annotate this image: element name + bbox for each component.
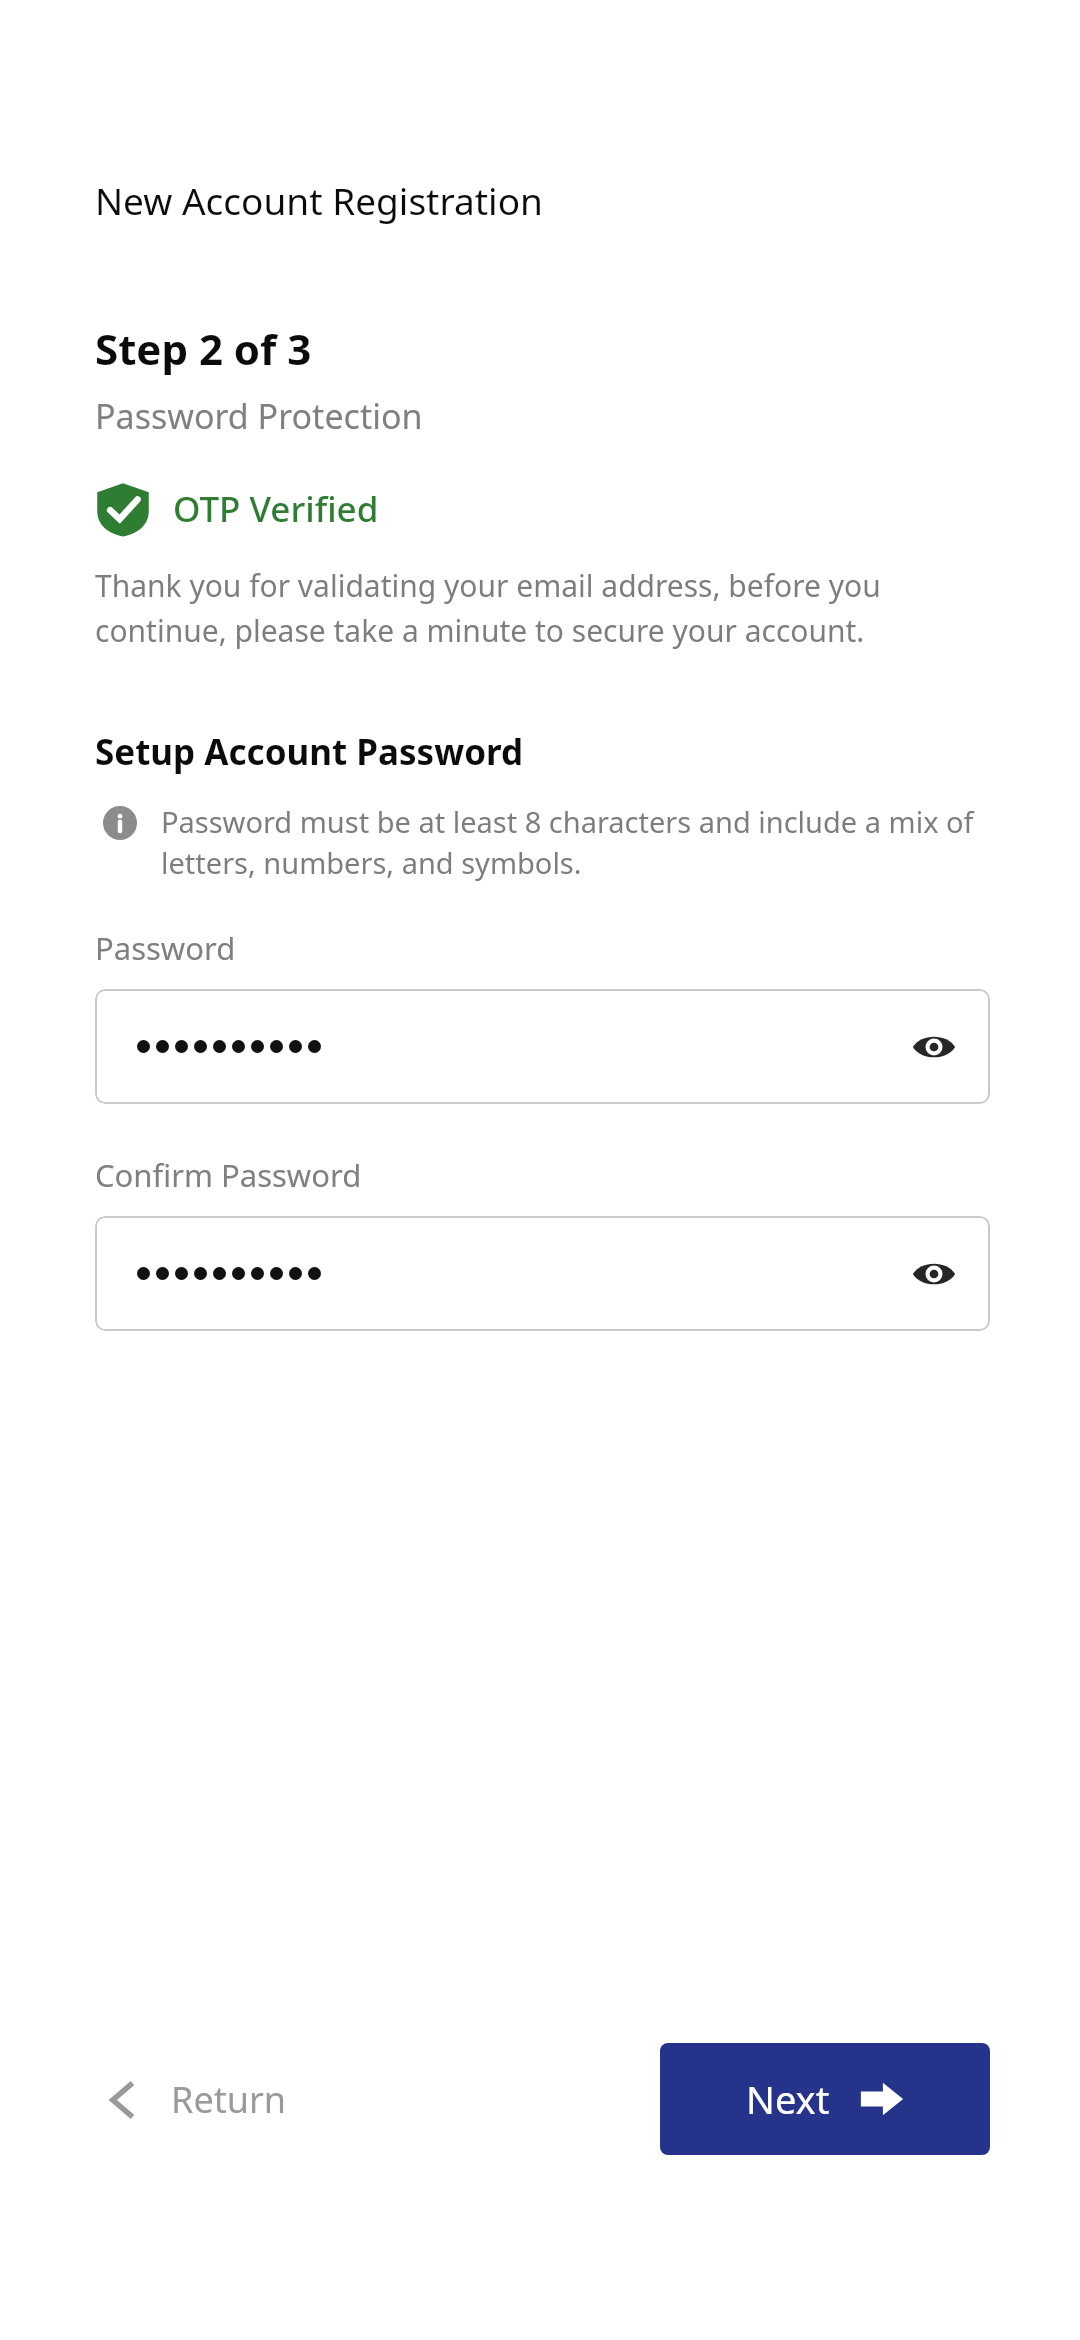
staticText: Password Protection	[95, 393, 423, 439]
button[interactable]: Show password	[906, 1246, 962, 1302]
button[interactable]: Return	[95, 2061, 293, 2138]
staticText: OTP Verified	[173, 485, 379, 533]
staticText: Step 2 of 3	[95, 320, 312, 377]
staticText: Next	[746, 2073, 830, 2125]
staticText: Setup Account Password	[95, 728, 524, 776]
button[interactable]: Show password	[95, 989, 990, 1104]
button[interactable]: Next	[660, 2043, 990, 2155]
staticText: Password must be at least 8 characters a…	[161, 802, 990, 883]
staticText: Thank you for validating your email addr…	[95, 565, 990, 650]
button[interactable]: Show password	[95, 1216, 990, 1331]
button[interactable]: Show password	[906, 1019, 962, 1075]
staticText: New Account Registration	[95, 175, 543, 225]
staticText: Password	[95, 927, 236, 969]
staticText: Return	[171, 2075, 287, 2124]
staticText: Confirm Password	[95, 1154, 362, 1196]
